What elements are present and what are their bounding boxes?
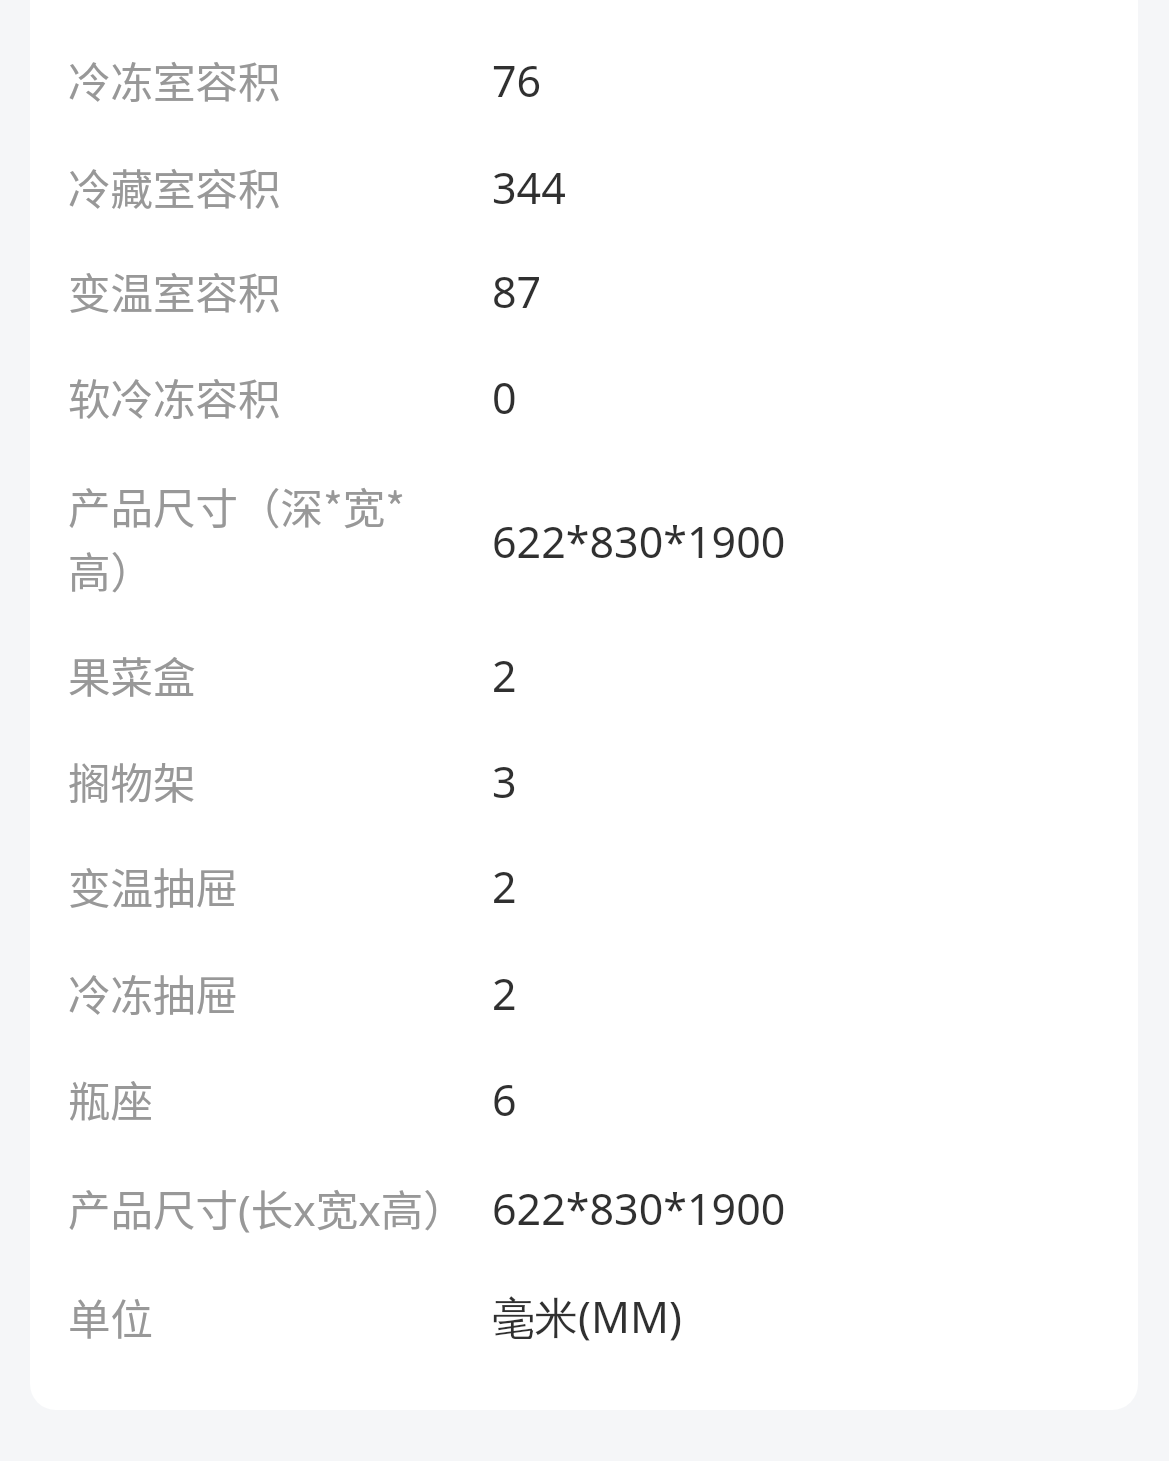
button[interactable]: 冷冻抽屉 [30,939,1138,1045]
staticText: 冷冻室容积 [68,47,281,111]
staticText: 冷冻抽屉 [68,960,239,1024]
button[interactable]: 变温抽屉 [30,832,1138,938]
staticText: 产品尺寸（深*宽* 高） [68,473,406,601]
staticText: 搁物架 [68,748,196,812]
staticText: 2 [492,853,517,917]
staticText: 变温抽屉 [68,853,239,917]
button[interactable]: 果菜盒 [30,621,1138,727]
staticText: 6 [492,1066,517,1130]
staticText: 毫米(MM) [492,1283,682,1349]
staticText: 变温室容积 [68,258,281,322]
staticText: 87 [492,258,542,322]
button[interactable]: 软冷冻容积 [30,343,1138,449]
staticText: 产品尺寸(长x宽x高） [68,1175,466,1240]
staticText: 果菜盒 [68,642,196,706]
button[interactable]: 冷冻室容积 [30,26,1138,132]
staticText: 2 [492,642,517,706]
button[interactable]: 单位 [30,1263,1138,1369]
staticText: 622*830*1900 [492,1175,786,1239]
staticText: 76 [492,47,542,111]
button[interactable]: 变温室容积 [30,237,1138,343]
staticText: 0 [492,364,517,428]
button[interactable]: 产品尺寸（深*宽* 高） [30,452,1138,622]
button[interactable]: 产品尺寸(长x宽x高） [30,1154,1138,1260]
staticText: 瓶座 [68,1066,154,1130]
staticText: 344 [492,154,566,218]
staticText: 622*830*1900 [492,508,786,572]
staticText: 单位 [68,1284,154,1348]
button[interactable]: 冷藏室容积 [30,133,1138,239]
staticText: 2 [492,960,517,1024]
staticText: 冷藏室容积 [68,154,281,218]
button[interactable]: 搁物架 [30,727,1138,833]
staticText: 软冷冻容积 [68,364,281,428]
staticText: 3 [492,748,517,812]
button[interactable]: 瓶座 [30,1045,1138,1151]
